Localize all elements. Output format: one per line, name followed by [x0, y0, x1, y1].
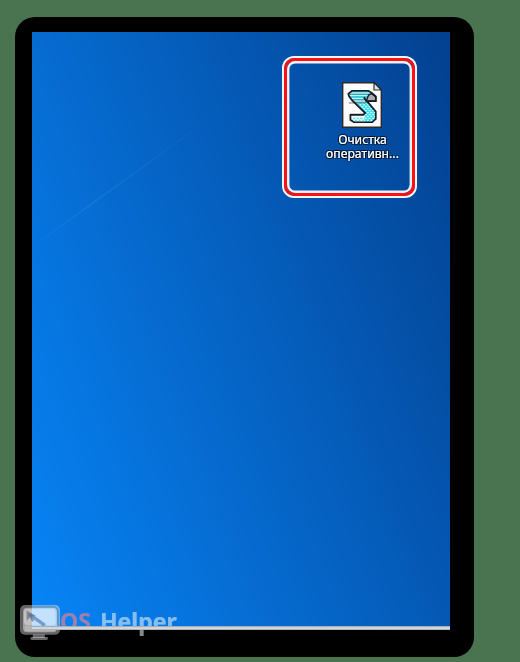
- staticText: OS: [60, 605, 91, 636]
- staticText: Очистка оперативн...: [327, 132, 400, 162]
- staticText: Очистка оперативн...: [326, 131, 399, 161]
- staticText: Helper: [100, 605, 177, 636]
- staticText: Очистка оперативн...: [325, 132, 398, 162]
- staticText: Очистка оперативн...: [327, 130, 400, 160]
- staticText: Очистка оперативн...: [325, 130, 398, 160]
- button[interactable]: Очистка оперативной памяти shortcut: [282, 56, 417, 198]
